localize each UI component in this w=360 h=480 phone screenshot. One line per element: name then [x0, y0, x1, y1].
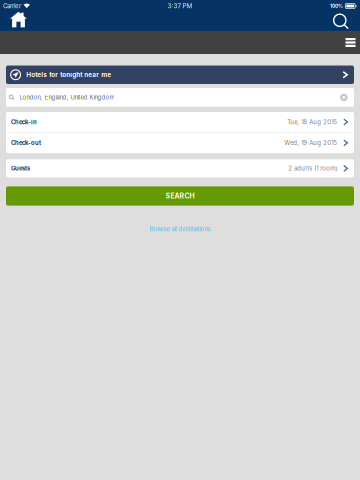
button[interactable]: Menu — [341, 31, 360, 54]
staticText: 2 adults (1 room) — [288, 165, 337, 172]
staticText: 3:37 PM — [167, 2, 192, 10]
button[interactable]: Check-out — [6, 133, 354, 153]
staticText: SEARCH — [165, 192, 194, 200]
staticText: Wed, 19 Aug 2015 — [284, 139, 337, 147]
staticText: London, England, United Kingdom — [19, 94, 114, 101]
staticText: Check-out — [11, 139, 41, 146]
button[interactable]: Hotels for tonight near me — [6, 65, 354, 84]
button[interactable]: Search — [325, 12, 349, 31]
staticText: Hotels for tonight near me — [26, 71, 111, 79]
staticText: Check-in — [11, 118, 37, 126]
button[interactable]: Check-in — [6, 112, 354, 132]
button[interactable]: SEARCH — [6, 186, 354, 206]
staticText: Browse all destinations — [149, 225, 210, 233]
staticText: Guests — [11, 165, 30, 172]
staticText: Tue, 18 Aug 2015 — [287, 118, 337, 126]
button[interactable]: Home — [10, 10, 36, 33]
button[interactable]: Browse all destinations — [6, 206, 354, 233]
button[interactable]: London, England, United Kingdom — [6, 88, 354, 107]
staticText: 100% — [330, 3, 343, 9]
button[interactable]: Guests — [6, 159, 354, 177]
staticText: Carrier — [3, 2, 21, 10]
